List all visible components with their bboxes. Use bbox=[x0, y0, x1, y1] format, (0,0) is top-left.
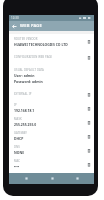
staticText: GATEWAY bbox=[14, 131, 27, 135]
button[interactable]: GATEWAY bbox=[9, 129, 94, 143]
button[interactable]: Home bbox=[44, 173, 60, 184]
staticText: WEB PAGE bbox=[20, 23, 43, 29]
button[interactable]: IP bbox=[9, 101, 94, 115]
button[interactable]: DNS bbox=[9, 143, 94, 157]
staticText: Password: admin bbox=[14, 79, 43, 84]
staticText: MAC bbox=[14, 159, 21, 163]
staticText: DNS bbox=[14, 145, 20, 149]
staticText: CONFIGURATION WEB PAGE bbox=[14, 55, 53, 59]
button[interactable]: Back bbox=[9, 21, 20, 31]
button[interactable]: Copy bbox=[84, 118, 93, 127]
button[interactable]: Recents bbox=[69, 173, 85, 184]
button[interactable]: BSSID bbox=[9, 171, 94, 184]
staticText: DHCP bbox=[14, 136, 24, 141]
button[interactable]: Copy bbox=[84, 104, 93, 113]
button[interactable]: Copy bbox=[84, 160, 93, 169]
button[interactable]: CONFIGURATION WEB PAGE bbox=[9, 49, 94, 65]
staticText: IP bbox=[14, 103, 17, 107]
button[interactable]: Back bbox=[18, 173, 34, 184]
button[interactable]: Copy bbox=[84, 132, 93, 141]
button[interactable]: Copy bbox=[84, 90, 93, 99]
button[interactable]: MASK bbox=[9, 115, 94, 129]
button[interactable]: Copy bbox=[84, 53, 93, 62]
button[interactable]: ROUTER VENDOR bbox=[9, 34, 94, 49]
staticText: User: admin bbox=[14, 73, 35, 78]
button[interactable]: EXTERNAL IP bbox=[9, 87, 94, 101]
staticText: NONE bbox=[14, 150, 25, 155]
staticText: USUAL DEFAULT DATA bbox=[14, 68, 44, 72]
button[interactable]: USUAL DEFAULT DATA bbox=[9, 65, 94, 87]
staticText: 02:11:22:33 bbox=[14, 178, 33, 183]
staticText: ROUTER VENDOR bbox=[14, 37, 38, 41]
staticText: 255.255.255.0 bbox=[14, 122, 37, 127]
staticText: 12:30 bbox=[11, 16, 19, 20]
staticText: MASK bbox=[14, 117, 22, 121]
staticText: •••• bbox=[14, 164, 20, 169]
button[interactable]: Copy bbox=[84, 146, 93, 155]
staticText: 192.168.18.1 bbox=[14, 108, 35, 113]
button[interactable]: Copy bbox=[84, 37, 93, 46]
button[interactable]: MAC bbox=[9, 157, 94, 171]
staticText: HUAWEI TECHNOLOGIES CO LTD bbox=[14, 42, 68, 47]
staticText: EXTERNAL IP bbox=[14, 92, 32, 96]
